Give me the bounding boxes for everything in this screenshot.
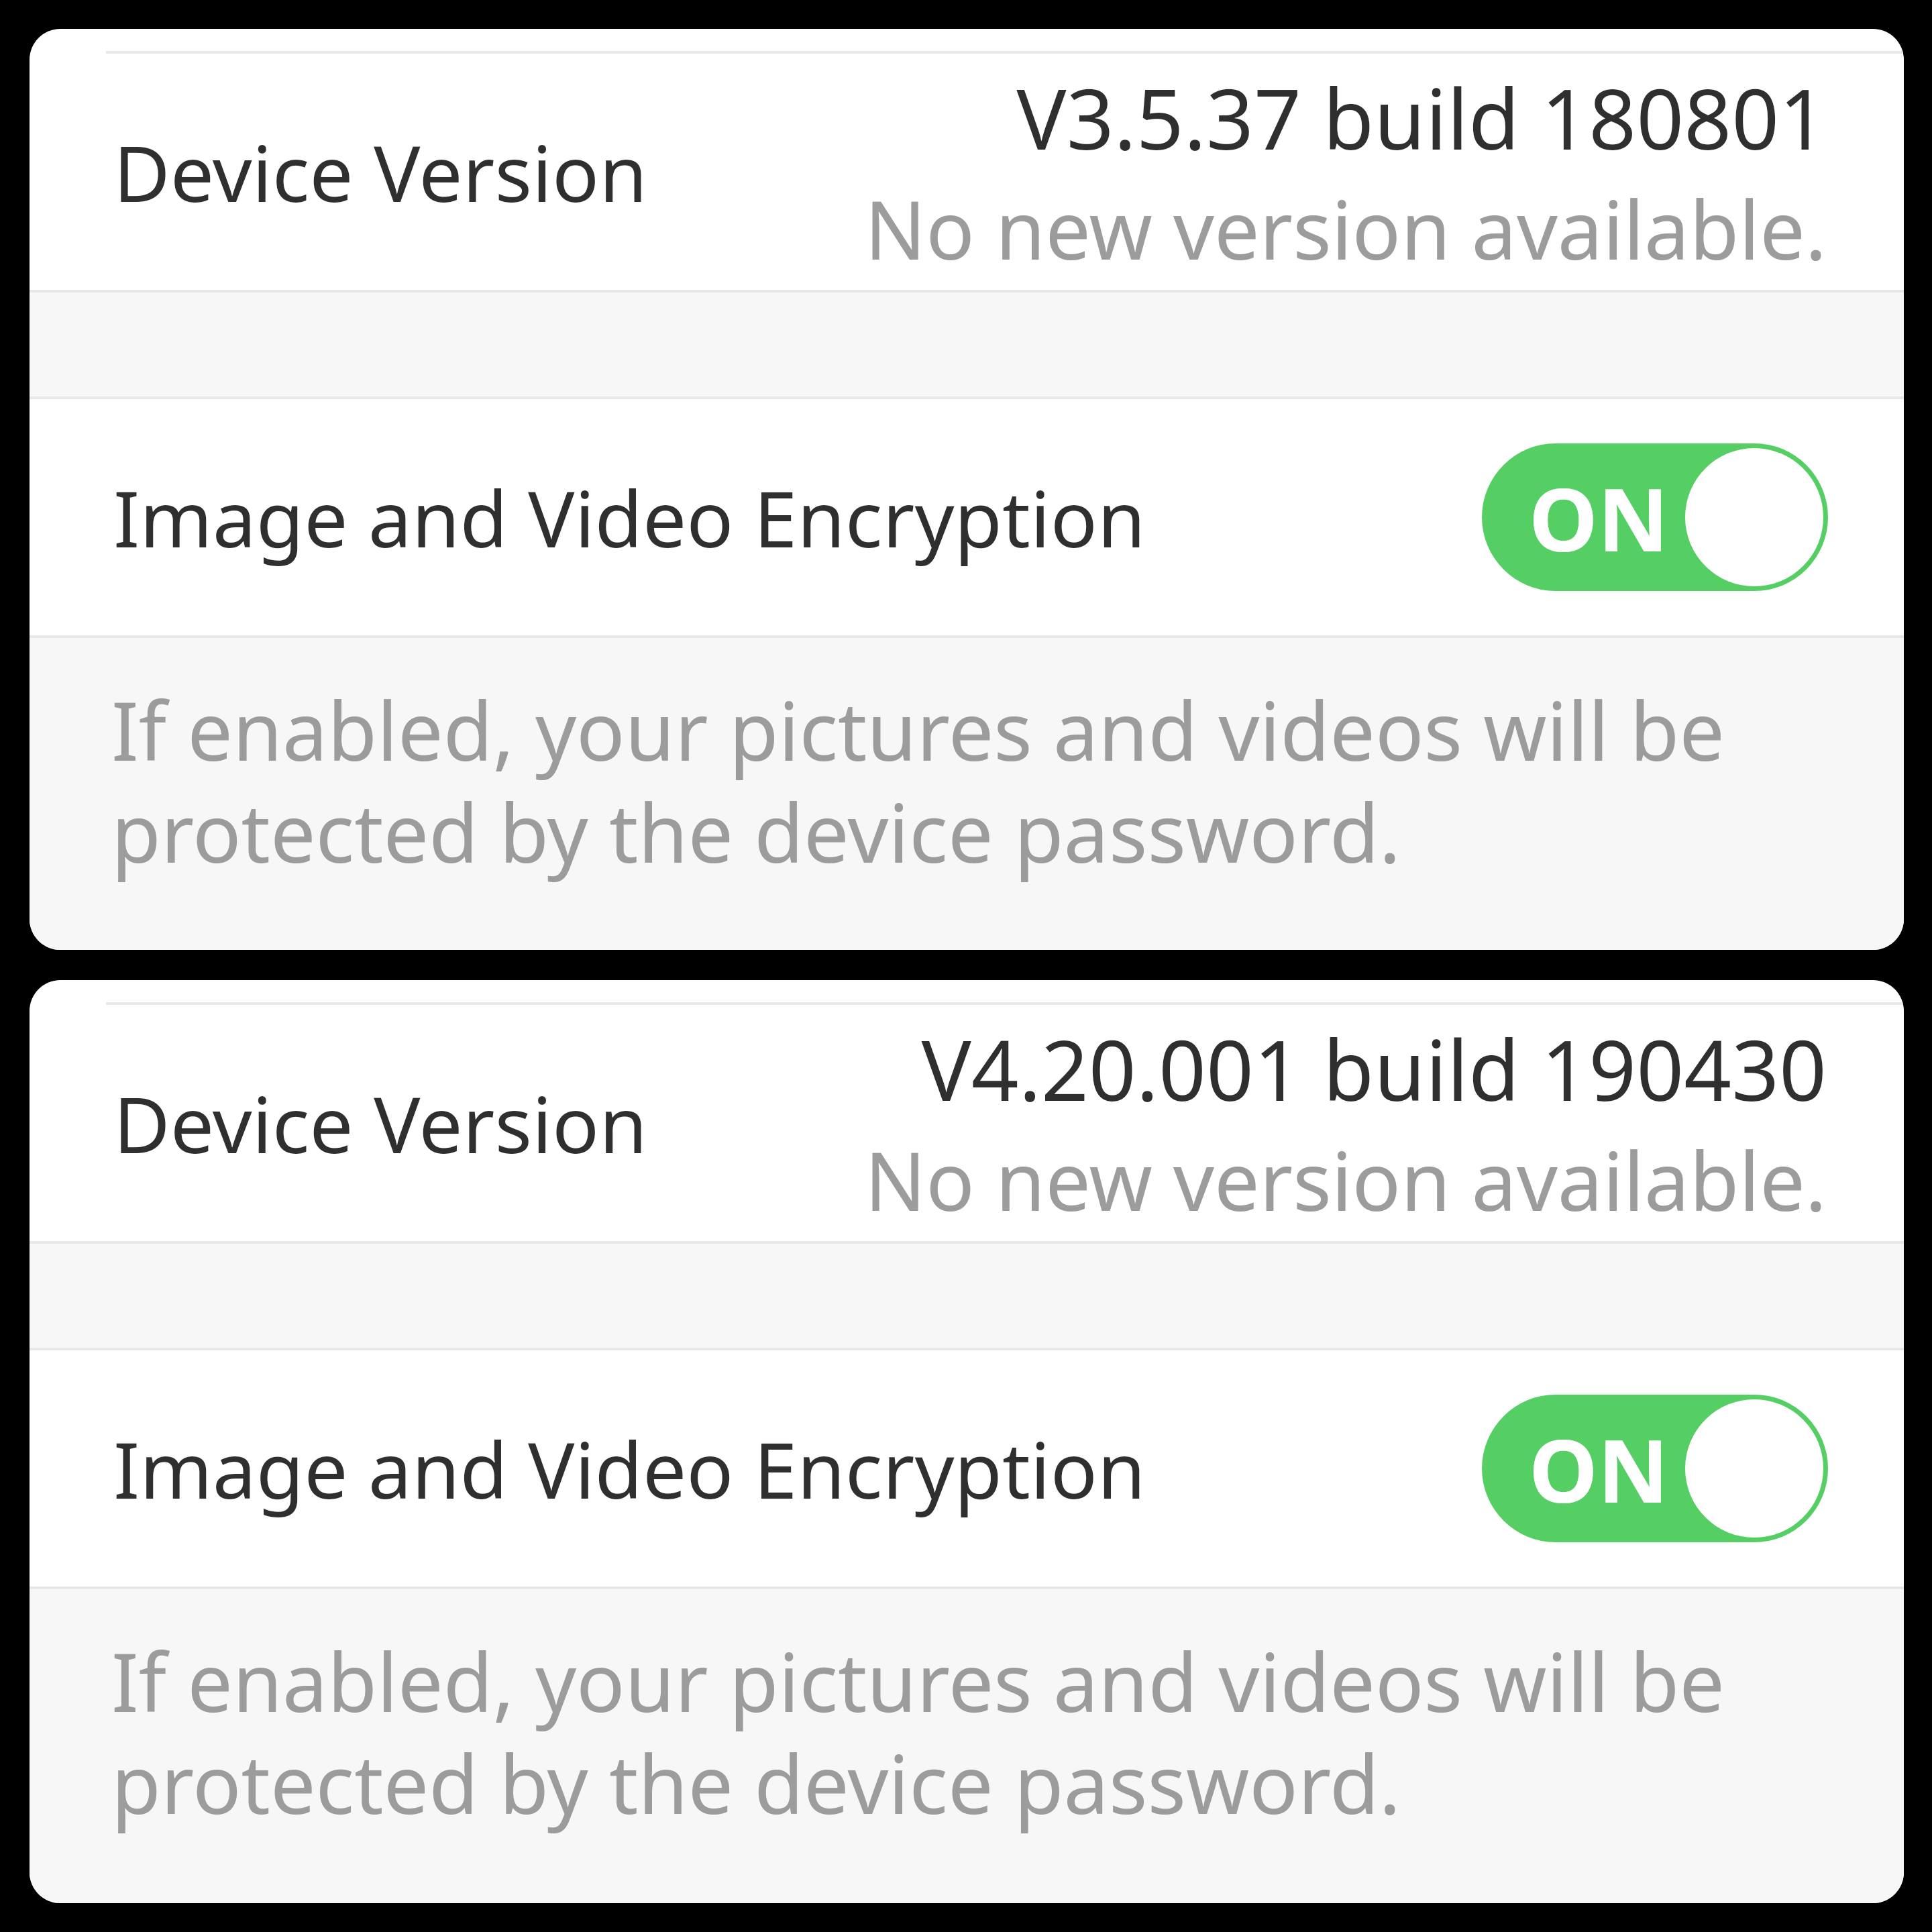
button[interactable]: Image and Video Encryption, on: [1482, 1395, 1828, 1542]
staticText: ON: [1529, 1409, 1669, 1528]
button[interactable]: Image and Video Encryption: [30, 1350, 1904, 1587]
button[interactable]: Device Version: [30, 1005, 1904, 1241]
staticText: Device Version: [113, 1070, 647, 1176]
staticText: No new version available.: [865, 1125, 1827, 1234]
staticText: ON: [1529, 458, 1669, 577]
staticText: Device Version: [113, 119, 647, 225]
staticText: If enabled, your pictures and videos wil…: [111, 1626, 1725, 1837]
staticText: Image and Video Encryption: [113, 464, 1146, 570]
button[interactable]: Device Version: [30, 54, 1904, 290]
staticText: V4.20.001 build 190430: [921, 1012, 1827, 1125]
staticText: Image and Video Encryption: [113, 1415, 1146, 1521]
button[interactable]: Image and Video Encryption, on: [1482, 443, 1828, 591]
staticText: V3.5.37 build 180801: [1016, 60, 1827, 174]
staticText: No new version available.: [865, 174, 1827, 283]
button[interactable]: Image and Video Encryption: [30, 399, 1904, 635]
staticText: If enabled, your pictures and videos wil…: [111, 675, 1725, 886]
